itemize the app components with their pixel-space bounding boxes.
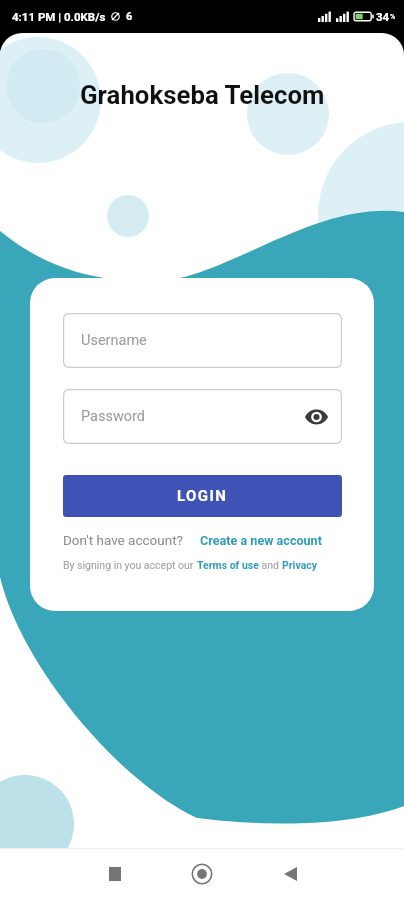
staticText: and [259,559,282,571]
button[interactable]: Back [246,852,334,896]
staticText: LOGIN [177,487,228,505]
staticText: % [390,13,396,21]
staticText: 4:11 PM | 0.0KB/s [12,10,106,23]
button[interactable]: Username [63,313,342,368]
button[interactable]: Home [158,852,246,896]
button[interactable]: Create a new account [200,533,322,548]
button[interactable]: Show password [303,404,329,430]
button[interactable]: LOGIN [63,475,342,517]
staticText: 34 [376,10,390,23]
staticText: By signing in you accept our [63,559,197,571]
staticText: Username [81,332,147,349]
staticText: 6 [126,10,133,23]
button[interactable]: Recent apps [71,852,158,896]
button[interactable]: Terms of use [197,559,259,571]
staticText: Don't have account? [63,532,183,548]
staticText: Grahokseba Telecom [80,80,325,110]
button[interactable]: Privacy [282,559,318,571]
staticText: Password [81,408,146,425]
button[interactable]: Password [63,389,342,444]
